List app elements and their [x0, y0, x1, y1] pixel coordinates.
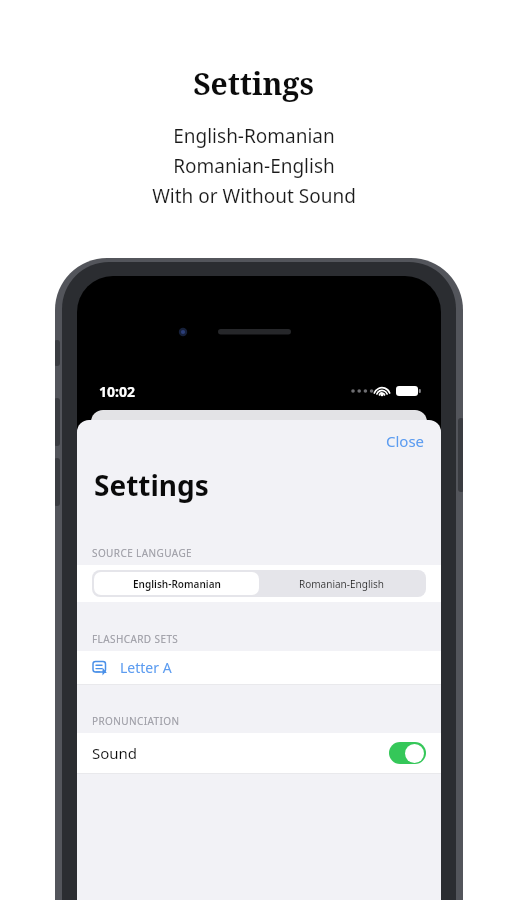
staticText: 10:02 — [99, 382, 135, 401]
staticText: Sound — [92, 743, 138, 763]
staticText: Settings — [193, 63, 314, 104]
staticText: FLASHCARD SETS — [92, 632, 179, 646]
button[interactable]: Sound — [77, 733, 441, 773]
staticText: PRONUNCIATION — [92, 714, 180, 728]
staticText: SOURCE LANGUAGE — [92, 546, 193, 560]
button[interactable]: Letter A — [77, 651, 441, 684]
staticText: Settings — [94, 466, 209, 504]
button[interactable]: Romanian-English — [259, 572, 424, 595]
staticText: With or Without Sound — [152, 183, 356, 209]
staticText: Close — [386, 431, 425, 451]
button[interactable]: Close — [370, 425, 441, 457]
staticText: English-Romanian — [173, 123, 335, 149]
button[interactable]: Sound toggle, on — [389, 742, 426, 764]
button[interactable]: English-Romanian — [94, 572, 259, 595]
staticText: English-Romanian — [133, 577, 221, 591]
staticText: Letter A — [120, 658, 172, 677]
staticText: Romanian-English — [299, 577, 385, 591]
staticText: Romanian-English — [173, 153, 335, 179]
